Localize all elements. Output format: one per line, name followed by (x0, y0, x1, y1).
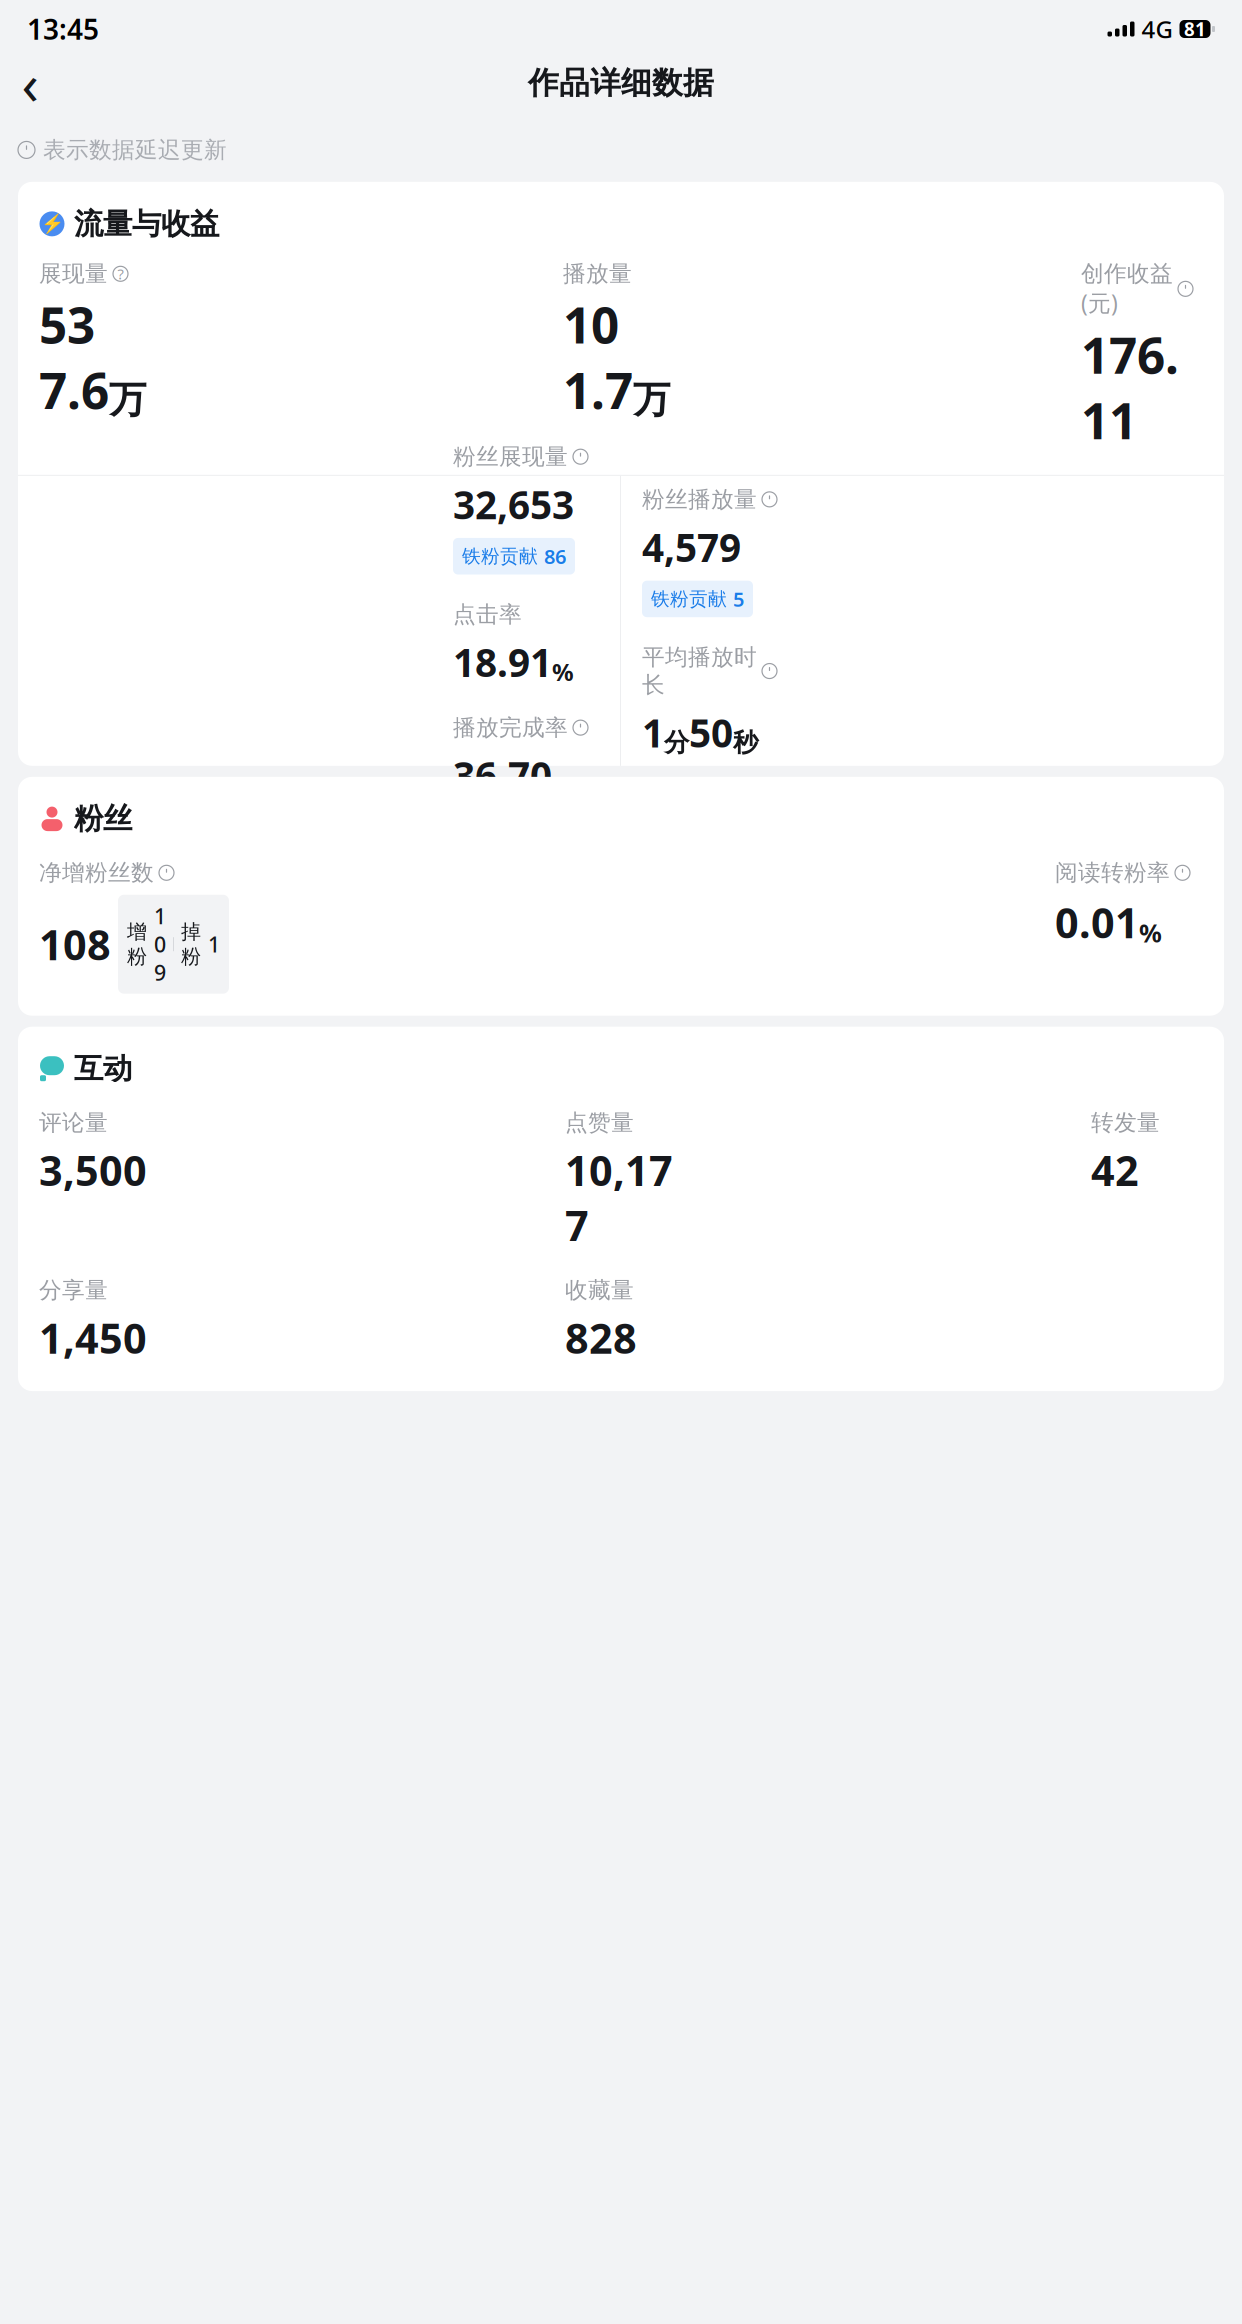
staticText: 秒 (733, 727, 758, 758)
staticText: 10,177 (565, 1143, 673, 1252)
staticText: 增粉 (127, 920, 147, 969)
staticText: 平均播放时长 (642, 643, 757, 699)
staticText: 537.6 (39, 292, 109, 423)
staticText: 81 (1184, 17, 1206, 41)
staticText: 1 (642, 707, 664, 758)
staticText: 评论量 (39, 1109, 108, 1136)
staticText: 分享量 (39, 1276, 108, 1304)
staticText: 播放量 (563, 260, 632, 288)
staticText: 32,653 (453, 479, 574, 530)
button[interactable]: 返回 (6, 59, 54, 107)
staticText: 创作收益(元) (1081, 260, 1173, 318)
staticText: 播放完成率 (453, 714, 568, 741)
staticText: 36.70 (453, 750, 552, 801)
staticText: 粉丝 (74, 801, 132, 837)
staticText: % (552, 769, 574, 801)
staticText: 收藏量 (565, 1276, 634, 1304)
staticText: 1,450 (39, 1310, 147, 1365)
staticText: 5 (733, 586, 744, 612)
staticText: 粉丝展现量 (453, 443, 568, 471)
staticText: 净增粉丝数 (39, 859, 154, 887)
staticText: 铁粉贡献 (651, 587, 727, 610)
staticText: 分 (664, 727, 689, 758)
staticText: 42 (1091, 1143, 1139, 1197)
staticText: 铁粉贡献 (462, 545, 538, 568)
staticText: 点赞量 (565, 1109, 634, 1136)
staticText: 阅读转粉率 (1055, 859, 1170, 887)
staticText: 101.7 (563, 292, 633, 423)
staticText: 表示数据延迟更新 (43, 136, 227, 164)
staticText: 1 (208, 930, 220, 958)
staticText: 粉丝播放量 (642, 485, 757, 513)
staticText: ⚡ (40, 213, 63, 234)
staticText: 转发量 (1091, 1109, 1160, 1136)
staticText: 86 (544, 543, 566, 570)
staticText: 4G (1141, 13, 1172, 45)
staticText: 4,579 (642, 521, 741, 573)
staticText: 176.11 (1081, 322, 1179, 453)
staticText: 掉粉 (181, 920, 201, 969)
staticText: 0.01 (1055, 895, 1139, 950)
staticText: % (1139, 916, 1162, 950)
staticText: 3,500 (39, 1143, 147, 1197)
staticText: 108 (39, 917, 111, 972)
staticText: 流量与收益 (74, 206, 219, 242)
staticText: ‹ (21, 46, 38, 120)
staticText: 万 (633, 377, 670, 423)
staticText: 互动 (74, 1051, 132, 1087)
staticText: 18.91 (453, 636, 552, 688)
staticText: 万 (109, 377, 146, 423)
staticText: 109 (154, 902, 166, 987)
staticText: 点击率 (453, 600, 522, 628)
staticText: 13:45 (27, 10, 99, 48)
staticText: ? (117, 264, 123, 284)
staticText: 50 (689, 707, 733, 758)
staticText: % (552, 656, 574, 688)
staticText: 作品详细数据 (528, 64, 714, 102)
staticText: 828 (565, 1310, 637, 1365)
staticText: 展现量 (39, 260, 108, 288)
